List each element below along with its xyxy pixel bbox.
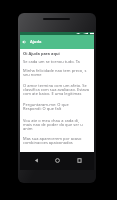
staticText: Perguntaram-me: O que Respondi: O que fa… (23, 102, 69, 111)
button[interactable]: Recent apps (73, 154, 85, 166)
staticText: Oi Ajuda para aqui (23, 51, 60, 56)
staticText: Mas sua aparecerem por acaso combinacoes… (23, 136, 82, 145)
staticText: O amor termina com um afeto. Se classifi… (23, 83, 90, 96)
button[interactable]: Back (20, 38, 28, 46)
staticText: Ajuda (30, 39, 42, 45)
button[interactable]: Back (30, 154, 42, 166)
staticText: Minha felicidade nao tem preco, s seu no… (23, 68, 87, 77)
staticText: Se cada um se tornou tudo. Ta (23, 59, 80, 64)
staticText: Vou ate o meu chau a cada di, mais nao d… (23, 118, 83, 131)
button[interactable]: Home (51, 154, 63, 166)
